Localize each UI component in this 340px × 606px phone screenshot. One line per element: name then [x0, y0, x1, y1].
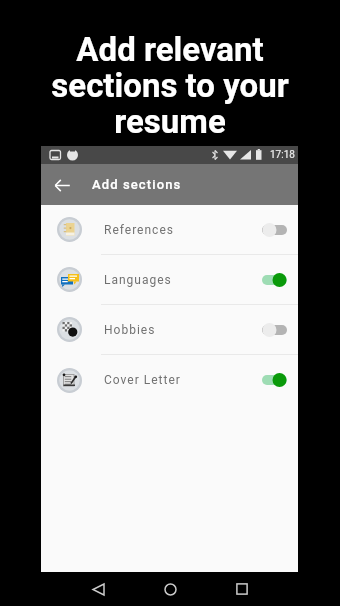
button[interactable]: Languages [41, 255, 298, 304]
button[interactable]: Home [158, 577, 182, 601]
button[interactable]: On [262, 272, 287, 288]
staticText: Languages [104, 273, 172, 287]
staticText: 17:18 [270, 149, 295, 161]
button[interactable]: Cover Letter [41, 355, 298, 405]
staticText: Hobbies [104, 323, 156, 337]
button[interactable]: On [262, 372, 287, 388]
button[interactable]: Hobbies [41, 305, 298, 354]
staticText: Add relevant sections to your resume [51, 30, 289, 141]
button[interactable]: Off [262, 322, 287, 338]
button[interactable]: Back [86, 577, 110, 601]
button[interactable]: Navigate up [49, 172, 75, 198]
button[interactable]: Off [262, 222, 287, 238]
staticText: Cover Letter [104, 373, 181, 387]
button[interactable]: Recent apps [230, 577, 254, 601]
button[interactable]: References [41, 205, 298, 254]
staticText: Add sections [92, 177, 182, 192]
staticText: References [104, 223, 174, 237]
